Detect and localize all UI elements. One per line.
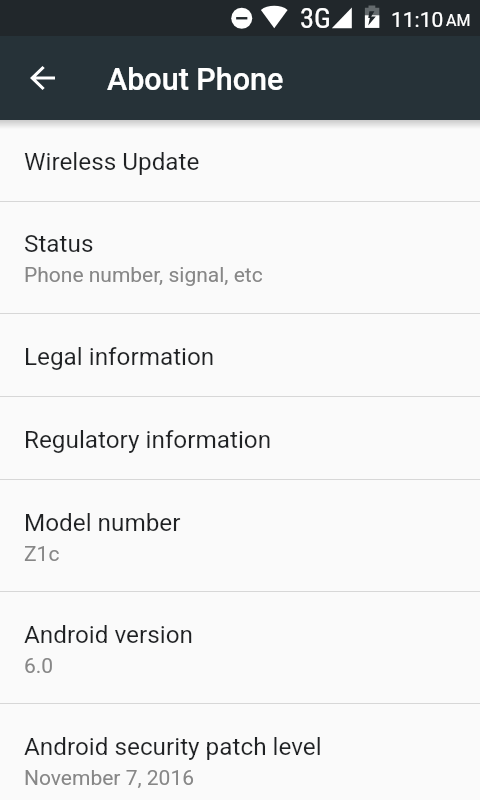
- staticText: Android version: [24, 620, 193, 648]
- staticText: Phone number, signal, etc: [24, 263, 263, 288]
- button[interactable]: Wireless Update: [0, 120, 480, 201]
- staticText: Status: [24, 229, 94, 257]
- staticText: 3G: [300, 2, 331, 35]
- staticText: Model number: [24, 508, 181, 536]
- staticText: Wireless Update: [24, 147, 200, 175]
- staticText: November 7, 2016: [24, 766, 194, 791]
- button[interactable]: Back: [14, 50, 70, 106]
- button[interactable]: Android version: [0, 592, 480, 703]
- staticText: Android security patch level: [24, 732, 322, 760]
- staticText: 6.0: [24, 654, 54, 679]
- staticText: Legal information: [24, 342, 215, 370]
- staticText: 11:10: [391, 8, 444, 33]
- button[interactable]: Regulatory information: [0, 397, 480, 479]
- staticText: Z1c: [24, 542, 60, 567]
- staticText: Regulatory information: [24, 425, 272, 453]
- button[interactable]: Legal information: [0, 314, 480, 396]
- staticText: About Phone: [107, 62, 284, 98]
- button[interactable]: Status: [0, 202, 480, 313]
- button[interactable]: Model number: [0, 480, 480, 591]
- staticText: AM: [446, 11, 471, 30]
- button[interactable]: Android security patch level: [0, 704, 480, 800]
